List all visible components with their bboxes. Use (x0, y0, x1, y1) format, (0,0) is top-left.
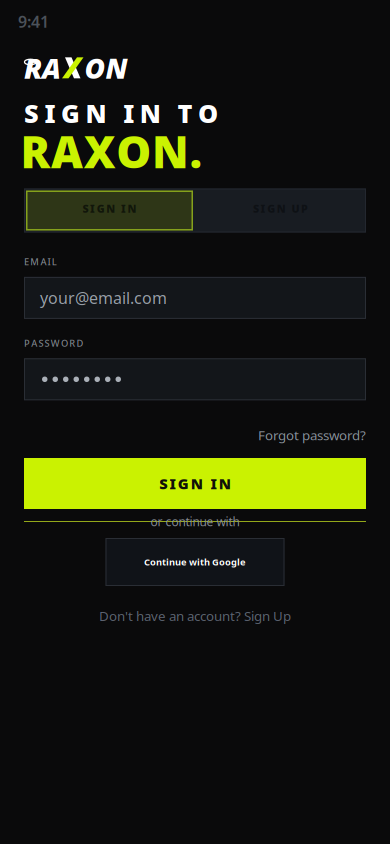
staticText: U (291, 201, 299, 216)
staticText: Don't have an account? Sign Up (99, 607, 291, 625)
staticText: ON (84, 49, 127, 86)
staticText: your@email.com (40, 287, 167, 308)
staticText: G (61, 96, 80, 130)
staticText: I (48, 255, 51, 268)
staticText: S (45, 337, 50, 349)
staticText: N (152, 122, 189, 180)
staticText: G (97, 201, 105, 216)
staticText: A (31, 337, 37, 349)
staticText: I (261, 201, 266, 216)
staticText: S (38, 337, 43, 349)
staticText: R (20, 122, 50, 180)
button[interactable]: Continue with Google (105, 538, 284, 586)
staticText: N (140, 96, 161, 130)
staticText: N (277, 201, 286, 216)
staticText: O (61, 337, 68, 349)
staticText: I (44, 96, 55, 130)
staticText: G (267, 201, 275, 216)
staticText: A (51, 122, 83, 180)
staticText: Continue with Google (144, 556, 246, 568)
staticText: O (198, 96, 218, 130)
staticText: or continue with (150, 513, 239, 529)
staticText: O (116, 122, 151, 180)
staticText: N (191, 474, 203, 493)
staticText: E (24, 255, 29, 268)
staticText: Forgot password? (258, 426, 366, 444)
staticText: P (24, 337, 30, 349)
staticText: I (211, 474, 217, 493)
button[interactable]: Forgot password? (258, 426, 366, 444)
staticText: N (106, 201, 115, 216)
staticText: N (219, 474, 231, 493)
staticText: S (82, 201, 88, 216)
staticText: L (52, 255, 57, 268)
staticText: I (90, 201, 95, 216)
staticText: W (51, 337, 60, 349)
staticText: S (24, 96, 39, 130)
staticText: D (76, 337, 83, 349)
staticText: R (69, 337, 75, 349)
button[interactable]: Don't have an account? Sign Up (99, 607, 291, 625)
staticText: T (177, 96, 192, 130)
staticText: . (189, 122, 202, 180)
staticText: N (127, 201, 136, 216)
staticText: M (30, 255, 39, 268)
staticText: I (121, 201, 126, 216)
staticText: A (40, 255, 46, 268)
button[interactable]: S (24, 458, 366, 509)
staticText: I (169, 474, 175, 493)
staticText: N (85, 96, 106, 130)
staticText: S (159, 474, 167, 493)
staticText: RA (24, 49, 61, 86)
staticText: P (301, 201, 308, 216)
staticText: 9:41 (18, 11, 49, 32)
staticText: X (84, 122, 116, 180)
staticText: S (253, 201, 259, 216)
staticText: I (123, 96, 134, 130)
staticText: G (178, 474, 189, 493)
button[interactable]: S (24, 188, 195, 232)
